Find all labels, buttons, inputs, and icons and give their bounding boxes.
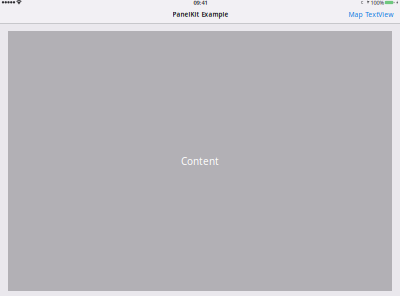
button[interactable]: TextView xyxy=(363,6,396,22)
staticText: 09:41 xyxy=(193,0,207,6)
button[interactable]: Map xyxy=(346,6,365,22)
staticText: PanelKit Example xyxy=(172,10,228,19)
staticText: Content xyxy=(181,154,219,168)
staticText: Map xyxy=(348,10,362,19)
staticText: 100% xyxy=(370,0,384,6)
staticText: TextView xyxy=(365,10,393,19)
